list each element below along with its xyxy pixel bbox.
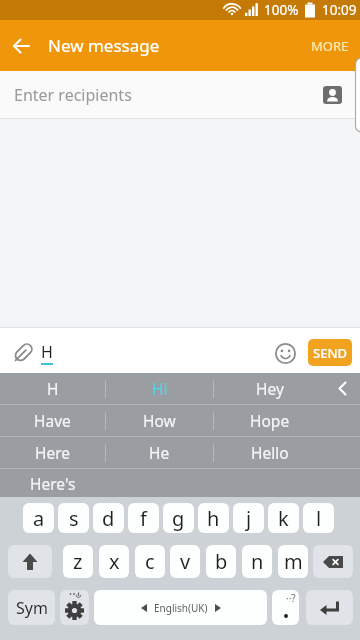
button[interactable]: [0, 24, 44, 68]
button[interactable]: How: [106, 405, 213, 436]
staticText: Here's: [30, 473, 76, 494]
staticText: s: [69, 505, 79, 532]
button[interactable]: h: [198, 503, 229, 533]
staticText: Hope: [250, 410, 290, 431]
staticText: d: [102, 505, 115, 532]
button[interactable]: Hi: [106, 373, 213, 404]
staticText: How: [143, 410, 176, 431]
button[interactable]: f: [128, 503, 159, 533]
button[interactable]: Here's: [0, 469, 105, 497]
staticText: z: [73, 548, 83, 575]
button[interactable]: s: [58, 503, 89, 533]
staticText: ··?: [286, 591, 296, 605]
staticText: l: [316, 505, 322, 532]
button[interactable]: MORE: [300, 20, 360, 71]
button[interactable]: English(UK): [94, 590, 267, 625]
staticText: H: [41, 341, 53, 363]
button[interactable]: ··?: [272, 590, 299, 625]
button[interactable]: H: [0, 373, 105, 404]
button[interactable]: He: [106, 437, 213, 468]
button[interactable]: Hey: [214, 373, 325, 404]
button[interactable]: [8, 338, 38, 368]
button[interactable]: [8, 545, 52, 578]
staticText: Have: [34, 410, 71, 431]
button[interactable]: [313, 545, 353, 578]
button[interactable]: SEND: [308, 339, 352, 366]
staticText: x: [109, 548, 120, 575]
button[interactable]: x: [99, 545, 129, 578]
button[interactable]: Enter recipients: [0, 71, 360, 118]
button[interactable]: g: [163, 503, 194, 533]
button[interactable]: [60, 590, 89, 625]
staticText: English(UK): [154, 601, 208, 615]
staticText: v: [180, 548, 191, 575]
staticText: New message: [48, 34, 160, 57]
staticText: SEND: [313, 344, 347, 362]
staticText: Hey: [256, 378, 284, 399]
staticText: Hi: [152, 378, 168, 399]
staticText: h: [207, 505, 220, 532]
button[interactable]: v: [170, 545, 200, 578]
staticText: He: [149, 442, 170, 463]
button[interactable]: a: [23, 503, 54, 533]
button[interactable]: z: [63, 545, 93, 578]
staticText: H: [47, 378, 59, 399]
button[interactable]: k: [268, 503, 299, 533]
button[interactable]: [325, 373, 360, 404]
button[interactable]: j: [233, 503, 264, 533]
staticText: MORE: [311, 37, 349, 55]
button[interactable]: n: [242, 545, 272, 578]
staticText: g: [172, 505, 185, 532]
button[interactable]: [312, 75, 352, 115]
staticText: k: [278, 505, 289, 532]
button[interactable]: d: [93, 503, 124, 533]
staticText: Hello: [251, 442, 289, 463]
staticText: f: [140, 505, 147, 532]
button[interactable]: m: [278, 545, 308, 578]
button[interactable]: c: [135, 545, 165, 578]
button[interactable]: [306, 590, 353, 625]
staticText: n: [251, 548, 264, 575]
button[interactable]: [269, 337, 301, 369]
button[interactable]: Have: [0, 405, 105, 436]
staticText: m: [284, 548, 303, 575]
button[interactable]: l: [303, 503, 334, 533]
staticText: a: [33, 505, 45, 532]
staticText: Sym: [16, 597, 48, 619]
staticText: Here: [35, 442, 71, 463]
button[interactable]: Sym: [8, 590, 55, 625]
staticText: 100%: [264, 1, 299, 19]
staticText: b: [215, 548, 228, 575]
button[interactable]: Here: [0, 437, 105, 468]
staticText: 10:09: [322, 1, 357, 19]
staticText: j: [246, 505, 252, 532]
button[interactable]: Hope: [214, 405, 325, 436]
staticText: c: [145, 548, 155, 575]
staticText: Enter recipients: [14, 84, 132, 106]
button[interactable]: b: [206, 545, 236, 578]
button[interactable]: Hello: [214, 437, 325, 468]
